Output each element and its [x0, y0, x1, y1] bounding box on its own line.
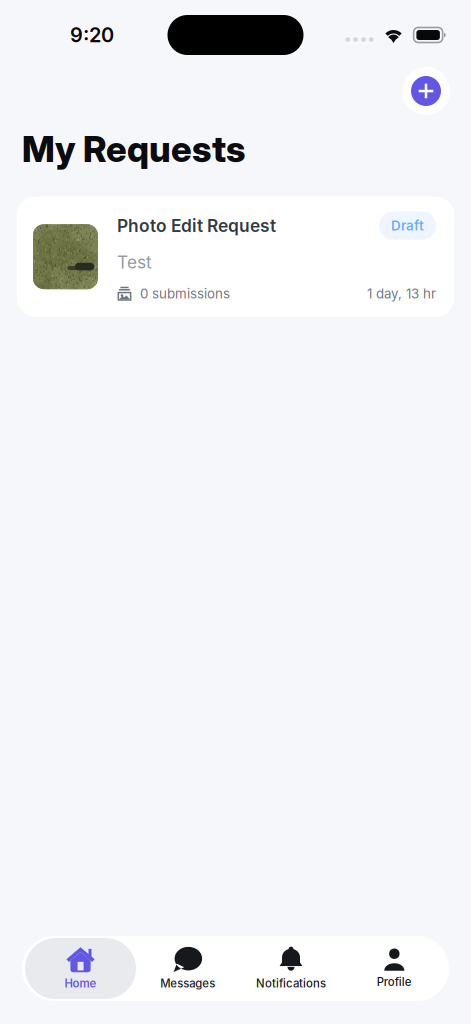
staticText: 9:20: [70, 23, 114, 47]
button[interactable]: Home: [25, 938, 136, 999]
staticText: Photo Edit Request: [117, 215, 276, 236]
button[interactable]: New request: [402, 67, 450, 115]
button[interactable]: Messages: [136, 938, 239, 999]
staticText: My Requests: [22, 127, 245, 171]
staticText: Notifications: [256, 977, 326, 990]
staticText: 0 submissions: [140, 286, 230, 302]
staticText: Home: [64, 977, 96, 990]
staticText: Messages: [160, 977, 215, 990]
staticText: Profile: [377, 975, 412, 989]
button[interactable]: Photo Edit Request: [17, 197, 454, 317]
staticText: 1 day, 13 hr: [367, 286, 436, 302]
button[interactable]: Notifications: [239, 938, 343, 999]
staticText: Test: [117, 252, 152, 273]
staticText: Draft: [391, 218, 424, 234]
button[interactable]: Profile: [343, 938, 446, 999]
